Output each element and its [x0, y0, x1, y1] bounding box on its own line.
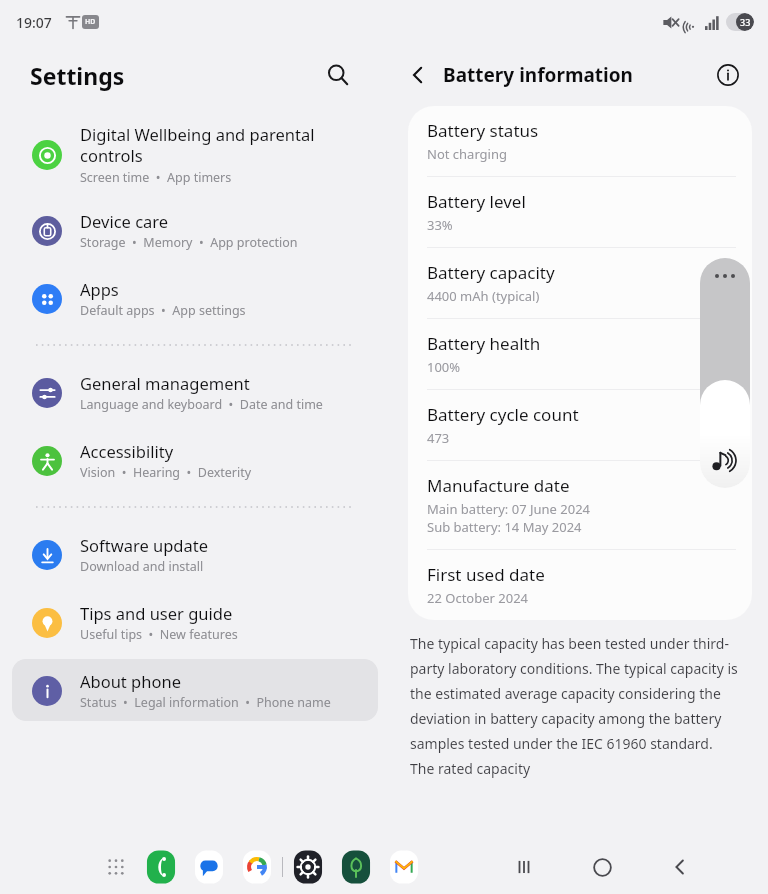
staticText: 22 October 2024 — [427, 589, 529, 607]
staticText: Device care — [80, 210, 169, 232]
staticText: Digital Wellbeing and parental controls — [80, 123, 315, 167]
button[interactable]: Battery cycle count — [408, 390, 752, 460]
staticText: Screen time • App timers — [80, 169, 232, 186]
button[interactable]: Battery health — [408, 319, 752, 389]
staticText: Apps — [80, 278, 119, 300]
button[interactable]: Manufacture date — [408, 461, 752, 549]
staticText: Battery information — [443, 62, 633, 88]
button[interactable]: messages — [190, 848, 228, 886]
button[interactable]: Home — [580, 845, 624, 889]
button[interactable]: Back — [658, 845, 702, 889]
button[interactable]: Info — [708, 55, 748, 95]
button[interactable]: Media panel — [700, 258, 750, 488]
staticText: Default apps • App settings — [80, 302, 246, 319]
button[interactable]: Tips and user guide — [12, 591, 378, 653]
staticText: Manufacture date — [427, 474, 570, 497]
staticText: Battery health — [427, 332, 541, 355]
button[interactable]: Recents — [502, 845, 546, 889]
staticText: Download and install — [80, 558, 204, 575]
staticText: 100% — [427, 358, 461, 376]
button[interactable]: About phone — [12, 659, 378, 721]
button[interactable]: Battery level — [408, 177, 752, 247]
button[interactable]: Software update — [12, 523, 378, 585]
button[interactable]: phone — [142, 848, 180, 886]
staticText: 473 — [427, 429, 450, 447]
staticText: Battery level — [427, 190, 526, 213]
staticText: The typical capacity has been tested und… — [410, 634, 738, 778]
staticText: Battery cycle count — [427, 403, 579, 426]
staticText: 33 — [740, 16, 751, 28]
staticText: Battery capacity — [427, 261, 555, 284]
button[interactable]: gmail — [385, 848, 423, 886]
button[interactable]: Search — [318, 55, 358, 95]
staticText: Not charging — [427, 145, 508, 163]
staticText: Status • Legal information • Phone name — [80, 694, 331, 711]
button[interactable]: First used date — [408, 550, 752, 620]
button[interactable]: settings — [289, 848, 327, 886]
staticText: 4400 mAh (typical) — [427, 287, 540, 305]
staticText: Language and keyboard • Date and time — [80, 396, 323, 413]
staticText: Storage • Memory • App protection — [80, 234, 298, 251]
staticText: General management — [80, 372, 250, 394]
staticText: Battery status — [427, 119, 539, 142]
staticText: Useful tips • New features — [80, 626, 238, 643]
staticText: About phone — [80, 670, 181, 692]
button[interactable]: Device care — [12, 199, 378, 261]
button[interactable]: leaf — [337, 848, 375, 886]
button[interactable]: Battery status — [408, 106, 752, 176]
button[interactable]: General management — [12, 361, 378, 423]
button[interactable]: Digital Wellbeing and parental controls — [12, 115, 378, 193]
staticText: First used date — [427, 563, 545, 586]
staticText: Accessibility — [80, 440, 174, 462]
button[interactable]: Battery capacity — [408, 248, 752, 318]
button[interactable]: Apps — [12, 267, 378, 329]
button[interactable]: google — [238, 848, 276, 886]
staticText: Sub battery: 14 May 2024 — [427, 518, 582, 536]
staticText: Settings — [30, 60, 125, 91]
staticText: Vision • Hearing • Dexterity — [80, 464, 252, 481]
button[interactable]: Apps — [98, 849, 134, 885]
button[interactable]: Accessibility — [12, 429, 378, 491]
staticText: Main battery: 07 June 2024 — [427, 500, 591, 518]
staticText: 33% — [427, 216, 453, 234]
staticText: Tips and user guide — [80, 602, 233, 624]
button[interactable]: Back — [398, 55, 438, 95]
staticText: 19:07 — [16, 13, 52, 32]
staticText: HD — [85, 17, 96, 27]
staticText: Software update — [80, 534, 208, 556]
